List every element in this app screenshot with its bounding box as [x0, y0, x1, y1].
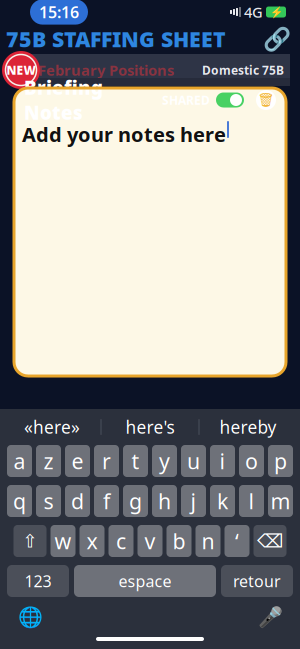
button[interactable]: Delete: [253, 525, 286, 557]
staticText: v: [144, 527, 155, 555]
button[interactable]: s: [36, 485, 61, 517]
button[interactable]: w: [50, 525, 75, 557]
button[interactable]: v: [137, 525, 162, 557]
button[interactable]: r: [94, 445, 119, 477]
staticText: ⇧: [22, 530, 38, 552]
staticText: x: [86, 527, 97, 555]
staticText: retour: [233, 570, 281, 592]
staticText: g: [129, 487, 142, 515]
button[interactable]: e: [65, 445, 90, 477]
staticText: b: [172, 527, 185, 555]
button[interactable]: n: [195, 525, 220, 557]
staticText: SHARED: [162, 92, 210, 108]
staticText: Domestic 75B: [202, 62, 284, 78]
staticText: 15:16: [39, 1, 79, 23]
button[interactable]: hereby: [199, 409, 296, 445]
button[interactable]: t: [123, 445, 148, 477]
staticText: c: [116, 527, 126, 555]
staticText: espace: [118, 570, 171, 592]
button[interactable]: y: [152, 445, 177, 477]
button[interactable]: a: [7, 445, 32, 477]
staticText: s: [43, 487, 53, 515]
button[interactable]: z: [36, 445, 61, 477]
button[interactable]: l: [239, 485, 264, 517]
staticText: q: [13, 487, 26, 515]
staticText: u: [187, 447, 200, 475]
staticText: Add your notes here: [22, 121, 226, 148]
button[interactable]: «here»: [3, 409, 100, 445]
staticText: d: [71, 487, 84, 515]
staticText: n: [201, 527, 214, 555]
staticText: z: [43, 447, 53, 475]
staticText: here's: [125, 415, 174, 438]
button[interactable]: u: [181, 445, 206, 477]
staticText: «here»: [24, 415, 80, 438]
staticText: 123: [24, 570, 51, 592]
button[interactable]: Shift: [13, 525, 46, 557]
button[interactable]: o: [239, 445, 264, 477]
staticText: h: [158, 487, 171, 515]
button[interactable]: m: [268, 485, 293, 517]
staticText: a: [13, 447, 25, 475]
staticText: 🌐: [17, 606, 42, 628]
button[interactable]: p: [268, 445, 293, 477]
button[interactable]: c: [108, 525, 133, 557]
button[interactable]: Dictation: [254, 601, 286, 633]
button[interactable]: h: [152, 485, 177, 517]
button[interactable]: f: [94, 485, 119, 517]
button[interactable]: here's: [101, 409, 198, 445]
staticText: y: [159, 447, 170, 475]
staticText: i: [219, 447, 225, 475]
staticText: f: [103, 487, 110, 515]
staticText: ⌫: [257, 530, 283, 552]
staticText: l: [248, 487, 254, 515]
staticText: ⚡: [269, 6, 282, 18]
staticText: 75B STAFFING SHEET: [6, 25, 226, 53]
staticText: r: [102, 447, 111, 475]
staticText: j: [190, 487, 196, 515]
button[interactable]: d: [65, 485, 90, 517]
button[interactable]: j: [181, 485, 206, 517]
button[interactable]: 123: [7, 565, 69, 597]
staticText: t: [131, 447, 139, 475]
staticText: 🔗: [263, 26, 291, 52]
button[interactable]: espace: [74, 565, 216, 597]
button[interactable]: k: [210, 485, 235, 517]
button[interactable]: Shared: [216, 92, 244, 107]
staticText: Briefing Notes: [24, 75, 103, 125]
staticText: hereby: [219, 415, 276, 438]
staticText: e: [71, 447, 83, 475]
staticText: w: [54, 527, 71, 555]
staticText: 4G: [244, 2, 263, 22]
button[interactable]: g: [123, 485, 148, 517]
button[interactable]: ʻ: [224, 525, 249, 557]
button[interactable]: Delete note: [256, 90, 276, 110]
staticText: 🗑: [257, 92, 274, 108]
staticText: February Positions: [38, 60, 174, 80]
staticText: m: [270, 487, 290, 515]
button[interactable]: Change keyboard: [14, 601, 46, 633]
button[interactable]: b: [166, 525, 191, 557]
staticText: k: [217, 487, 228, 515]
staticText: NEW: [6, 62, 35, 78]
button[interactable]: i: [210, 445, 235, 477]
button[interactable]: Attachments: [260, 24, 294, 54]
staticText: p: [274, 447, 287, 475]
button[interactable]: retour: [221, 565, 293, 597]
staticText: ʻ: [235, 527, 239, 555]
staticText: o: [245, 447, 258, 475]
button[interactable]: x: [79, 525, 104, 557]
button[interactable]: q: [7, 485, 32, 517]
staticText: 🎤: [257, 606, 282, 628]
